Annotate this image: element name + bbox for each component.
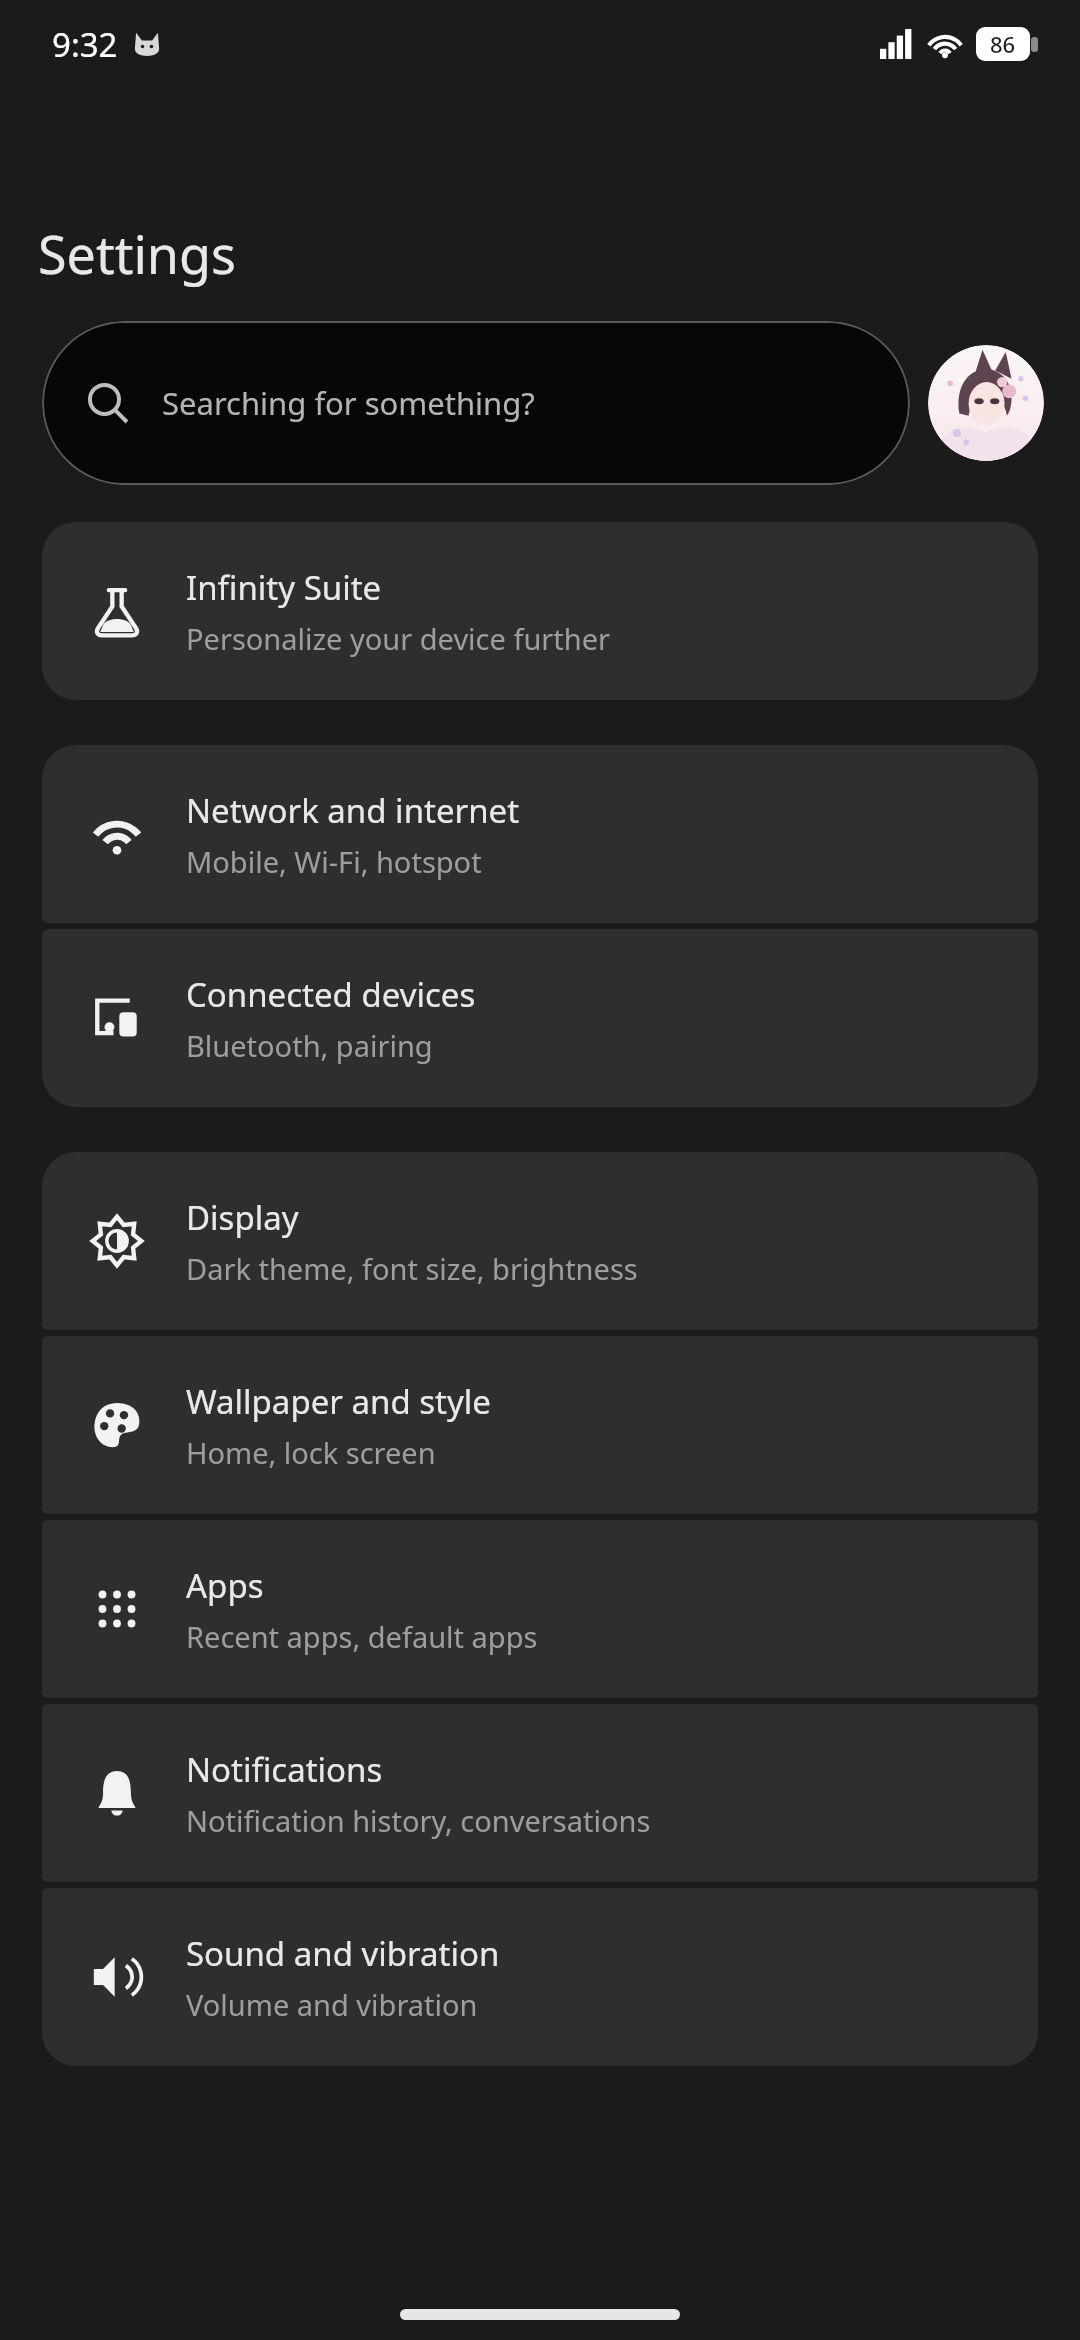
staticText: Infinity Suite [186,565,382,610]
staticText: Home, lock screen [186,1433,436,1472]
staticText: Wallpaper and style [186,1379,491,1424]
button[interactable]: Display [42,1152,1038,1330]
staticText: Mobile, Wi-Fi, hotspot [186,842,482,881]
staticText: Apps [186,1563,264,1608]
staticText: Display [186,1195,299,1240]
staticText: Personalize your device further [186,619,611,658]
staticText: 86 [990,29,1016,59]
button[interactable]: Searching for something? [42,321,910,485]
staticText: Network and internet [186,788,520,833]
staticText: Bluetooth, pairing [186,1026,433,1065]
staticText: 9:32 [52,22,118,67]
button[interactable]: Network and internet [42,745,1038,923]
staticText: Searching for something? [162,382,535,424]
staticText: Notifications [186,1747,383,1792]
button[interactable]: Apps [42,1520,1038,1698]
button[interactable]: Infinity Suite [42,522,1038,700]
staticText: Volume and vibration [186,1985,478,2024]
button[interactable]: Connected devices [42,929,1038,1107]
staticText: Settings [38,218,236,289]
button[interactable]: Wallpaper and style [42,1336,1038,1514]
staticText: Notification history, conversations [186,1801,651,1840]
staticText: Recent apps, default apps [186,1617,538,1656]
staticText: Sound and vibration [186,1931,500,1976]
button[interactable]: Account profile [928,345,1044,461]
button[interactable]: Notifications [42,1704,1038,1882]
button[interactable]: Sound and vibration [42,1888,1038,2066]
staticText: Connected devices [186,972,476,1017]
staticText: Dark theme, font size, brightness [186,1249,638,1288]
